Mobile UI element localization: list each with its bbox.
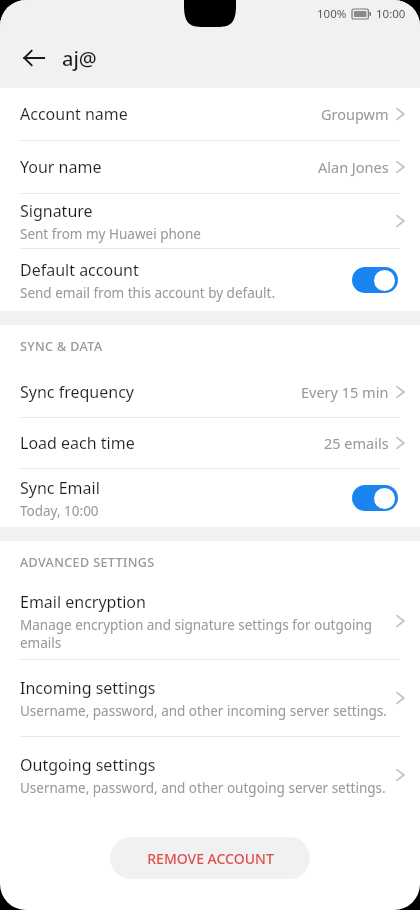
staticText: REMOVE ACCOUNT	[147, 849, 274, 868]
button[interactable]: Your name	[0, 141, 420, 193]
staticText: Sent from my Huawei phone	[20, 225, 201, 243]
staticText: Load each time	[20, 432, 135, 454]
button[interactable]: Toggle on	[352, 485, 398, 511]
staticText: Manage encryption and signature settings…	[20, 616, 395, 652]
button[interactable]: Account name	[0, 88, 420, 140]
button[interactable]: Incoming settings	[0, 660, 420, 736]
button[interactable]: Default account	[0, 249, 420, 311]
button[interactable]: Outgoing settings	[0, 737, 420, 813]
staticText: SYNC & DATA	[20, 338, 103, 355]
button[interactable]: REMOVE ACCOUNT	[110, 837, 310, 879]
button[interactable]: Signature	[0, 194, 420, 248]
staticText: Groupwm	[321, 104, 389, 124]
staticText: Sync Email	[20, 477, 100, 499]
staticText: Sync frequency	[20, 381, 134, 403]
staticText: Signature	[20, 200, 93, 222]
staticText: Username, password, and other incoming s…	[20, 702, 387, 720]
button[interactable]: Back	[12, 36, 56, 80]
staticText: Default account	[20, 259, 139, 281]
staticText: Incoming settings	[20, 677, 156, 699]
button[interactable]: Toggle on	[352, 267, 398, 293]
staticText: 10:00	[376, 6, 406, 22]
staticText: Username, password, and other outgoing s…	[20, 779, 386, 797]
staticText: Your name	[20, 156, 102, 178]
button[interactable]: Sync frequency	[0, 367, 420, 417]
button[interactable]: Email encryption	[0, 583, 420, 659]
staticText: Send email from this account by default.	[20, 284, 276, 302]
staticText: aj@	[62, 45, 97, 72]
staticText: 25 emails	[324, 433, 389, 453]
button[interactable]: Load each time	[0, 418, 420, 468]
staticText: ADVANCED SETTINGS	[20, 554, 155, 571]
staticText: Account name	[20, 103, 128, 125]
staticText: Email encryption	[20, 591, 146, 613]
staticText: Every 15 min	[301, 382, 389, 402]
staticText: 100%	[317, 6, 347, 22]
staticText: Alan Jones	[318, 157, 389, 177]
staticText: Today, 10:00	[20, 502, 99, 520]
staticText: Outgoing settings	[20, 754, 156, 776]
button[interactable]: Sync Email	[0, 469, 420, 527]
